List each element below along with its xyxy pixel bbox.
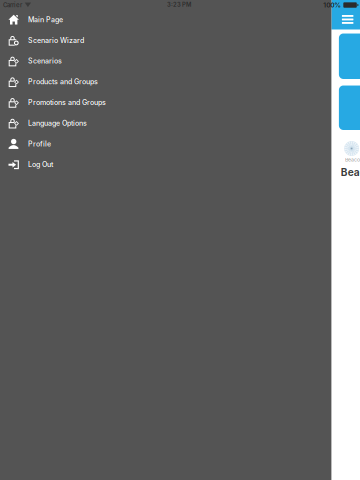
staticText: Log Out <box>28 160 53 169</box>
staticText: Products and Groups <box>28 77 98 86</box>
staticText: 3:23 PM <box>167 1 191 8</box>
staticText: Carrier <box>3 1 22 9</box>
staticText: Main Page <box>28 15 63 24</box>
button[interactable]: Products and Groups <box>0 71 331 92</box>
staticText: Scenario Wizard <box>28 36 84 45</box>
staticText: 100% <box>323 1 341 9</box>
button[interactable]: Scenario Wizard <box>0 30 331 51</box>
staticText: Beacon Scenario Wizard <box>341 166 360 179</box>
staticText: Profile <box>28 140 51 148</box>
staticText: Promotions and Groups <box>28 98 106 107</box>
staticText: Scenarios <box>28 57 62 65</box>
button[interactable]: Card two <box>339 85 360 130</box>
button[interactable]: Language Options <box>0 113 331 133</box>
button[interactable]: Promotions and Groups <box>0 92 331 113</box>
staticText: Language Options <box>28 119 87 127</box>
button[interactable]: Main Page <box>0 9 331 30</box>
button[interactable]: Scenarios <box>0 51 331 71</box>
button[interactable]: Card one <box>339 33 360 79</box>
button[interactable]: Log Out <box>0 154 331 175</box>
button[interactable]: Menu <box>338 12 357 27</box>
button[interactable]: Profile <box>0 133 331 154</box>
staticText: Beacon <box>345 156 360 163</box>
